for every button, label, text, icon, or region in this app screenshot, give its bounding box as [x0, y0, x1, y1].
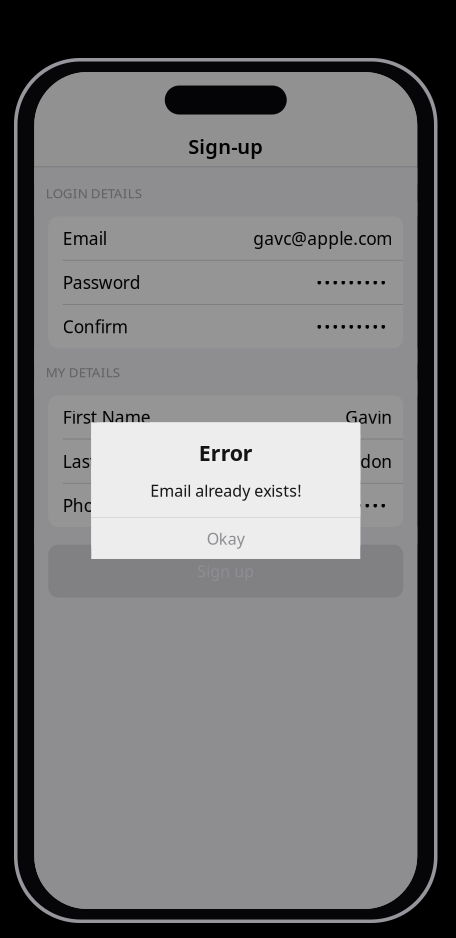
button[interactable]: Sign up — [34, 545, 417, 598]
button[interactable]: Last Name — [48, 439, 403, 483]
button[interactable]: First Name — [48, 395, 403, 439]
button[interactable]: Phone — [48, 484, 403, 527]
staticText: • • • • • • • • • — [316, 316, 386, 337]
staticText: gavc@apple.com — [253, 227, 392, 250]
staticText: Sign-up — [188, 133, 263, 160]
staticText: • • • • — [356, 495, 386, 516]
staticText: LOGIN DETAILS — [46, 184, 142, 202]
staticText: • • • • • • • • • — [316, 272, 386, 293]
button[interactable]: Confirm — [48, 305, 403, 348]
staticText: Phone — [63, 494, 115, 517]
staticText: Error — [199, 438, 253, 467]
staticText: First Name — [63, 405, 151, 428]
button[interactable]: Password — [48, 261, 403, 304]
staticText: MY DETAILS — [46, 363, 120, 381]
button[interactable]: Okay — [91, 518, 360, 559]
staticText: Email — [63, 227, 107, 250]
staticText: Langdon — [319, 450, 392, 473]
staticText: Email already exists! — [150, 480, 301, 501]
staticText: Sign up — [197, 560, 254, 582]
staticText: Confirm — [63, 315, 128, 338]
button[interactable]: Email — [48, 216, 403, 260]
staticText: Password — [63, 271, 141, 294]
staticText: Last Name — [63, 450, 150, 473]
staticText: Gavin — [345, 405, 392, 428]
staticText: Okay — [207, 528, 245, 549]
